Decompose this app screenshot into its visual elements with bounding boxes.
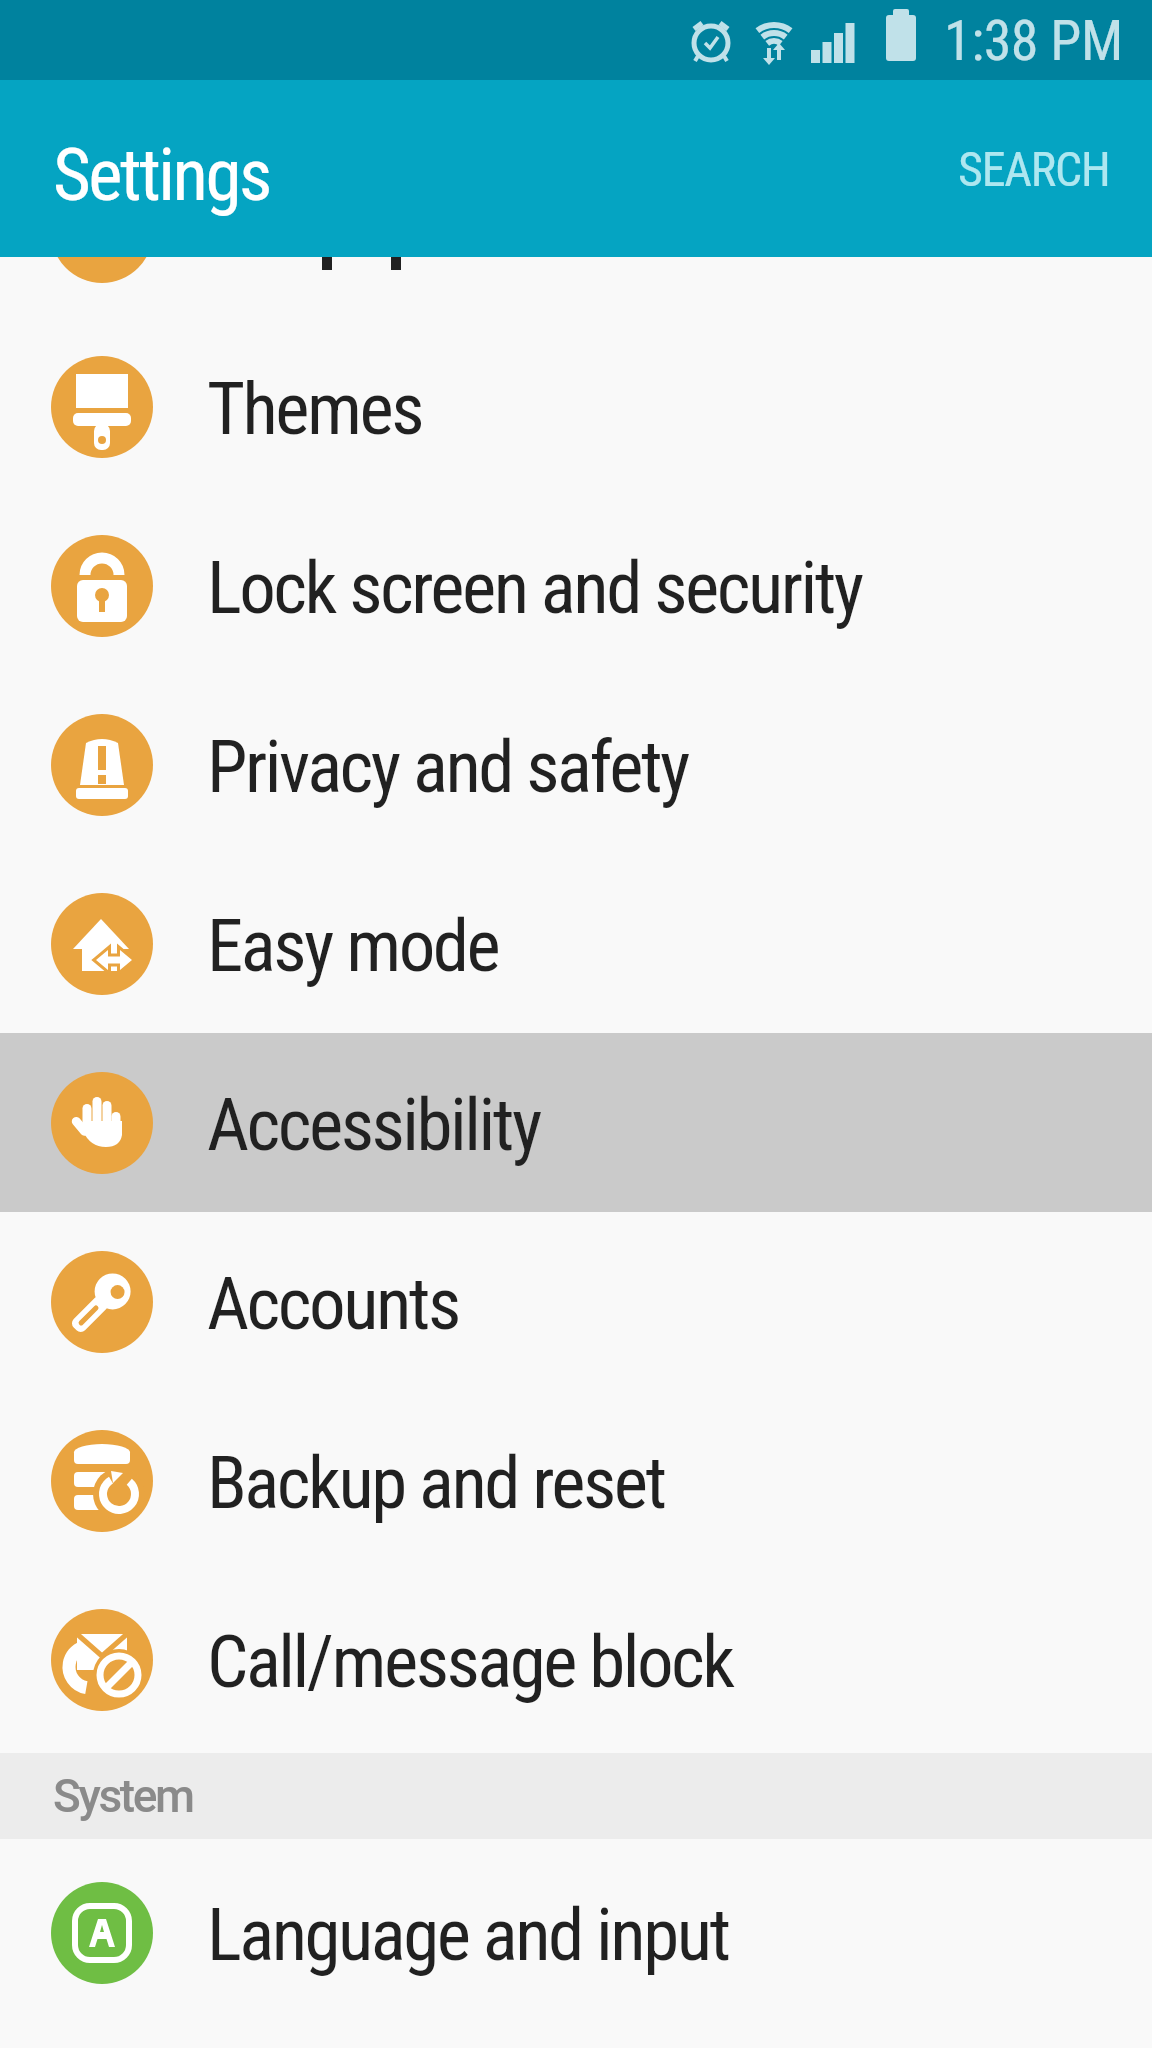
button[interactable]: Lock screen and security <box>0 496 1152 675</box>
button[interactable]: Accounts <box>0 1212 1152 1391</box>
staticText: Lock screen and security <box>207 545 862 631</box>
button[interactable]: Easy mode <box>0 854 1152 1033</box>
staticText: Themes <box>207 366 422 452</box>
button[interactable]: Privacy and safety <box>0 675 1152 854</box>
staticText: Language and input <box>207 1892 729 1978</box>
staticText: Accounts <box>207 1261 459 1347</box>
staticText: Settings <box>53 132 270 218</box>
staticText: Privacy and safety <box>207 724 689 810</box>
staticText: Call/message block <box>207 1619 733 1705</box>
button[interactable]: Backup and reset <box>0 1391 1152 1570</box>
button[interactable]: SEARCH <box>958 141 1110 197</box>
staticText: Easy mode <box>207 903 499 989</box>
staticText: 1:38 PM <box>944 8 1123 74</box>
staticText: SEARCH <box>958 141 1110 197</box>
button[interactable]: Themes <box>0 317 1152 496</box>
staticText: System <box>53 1769 193 1823</box>
button[interactable]: Accessibility <box>0 1033 1152 1212</box>
button[interactable]: Call/message block <box>0 1570 1152 1749</box>
button[interactable]: Language and input <box>0 1843 1152 2022</box>
staticText: Accessibility <box>207 1082 540 1168</box>
staticText: Backup and reset <box>207 1440 665 1526</box>
